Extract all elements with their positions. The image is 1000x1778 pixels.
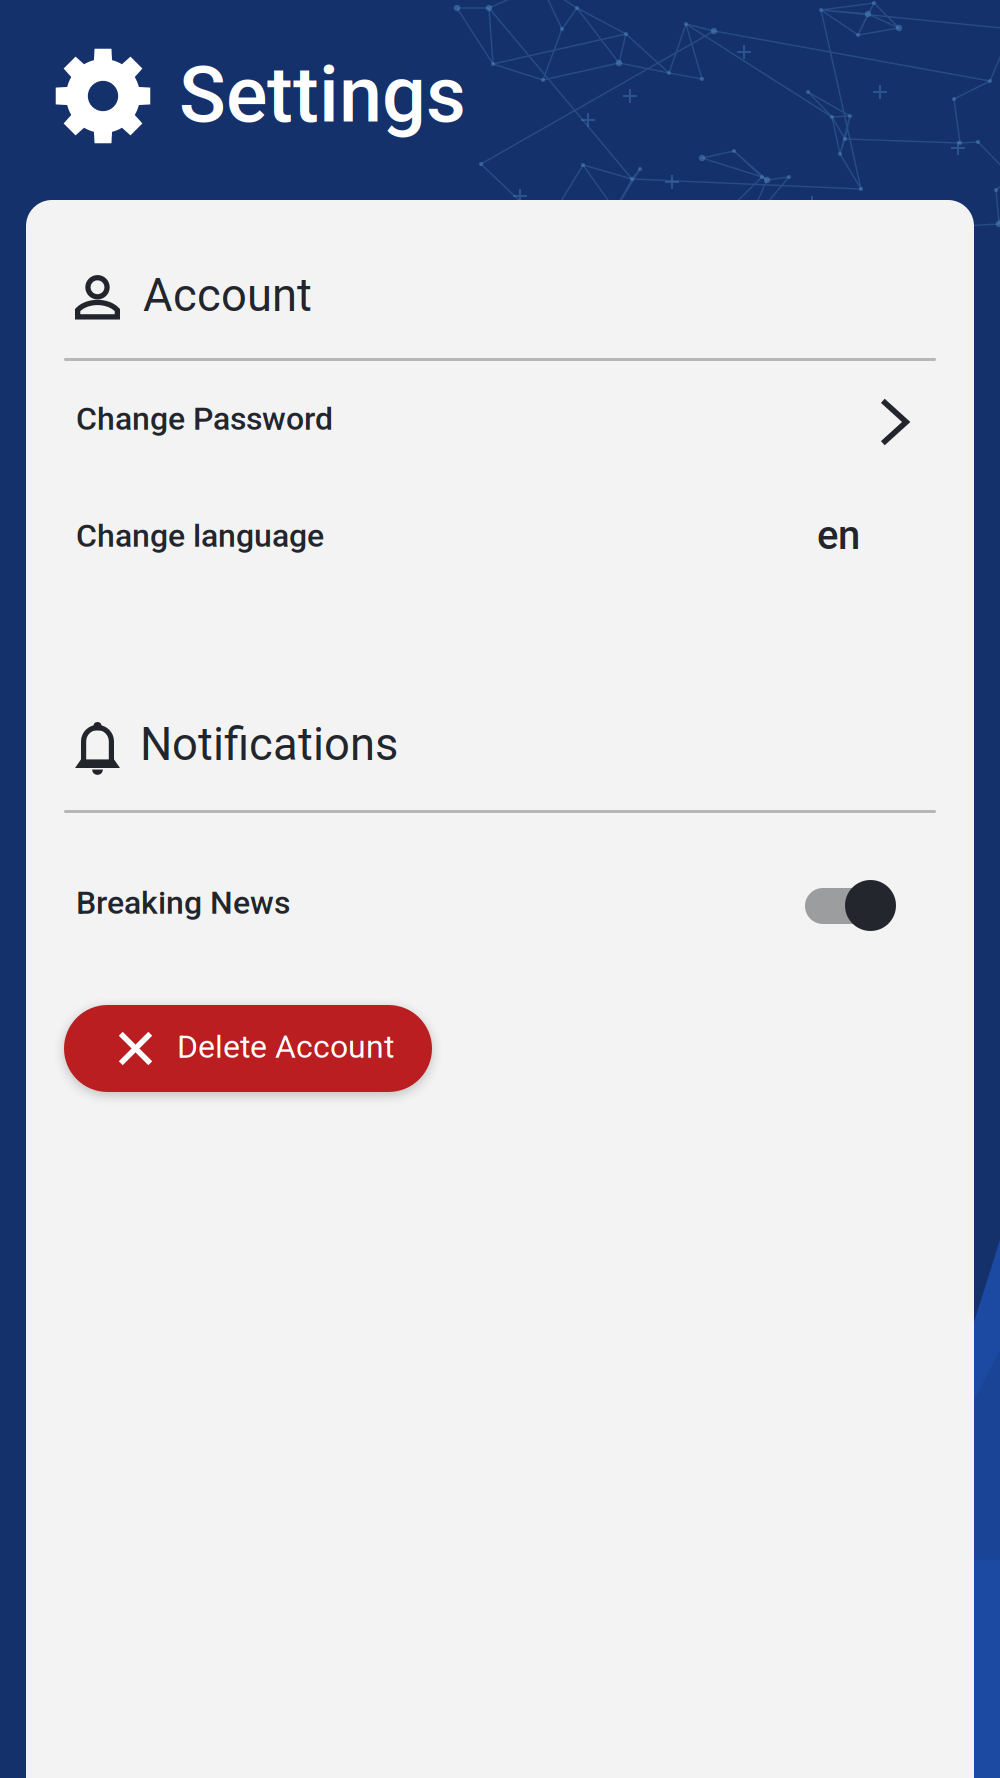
- staticText: Notifications: [140, 718, 398, 771]
- button[interactable]: Delete Account: [64, 1005, 432, 1092]
- staticText: Delete Account: [177, 1028, 394, 1065]
- staticText: Account: [143, 269, 312, 322]
- staticText: Settings: [179, 50, 466, 140]
- button[interactable]: Change Password: [26, 380, 974, 496]
- staticText: Change language: [76, 517, 324, 554]
- staticText: en: [817, 512, 860, 559]
- button[interactable]: Breaking News: [26, 864, 974, 980]
- button[interactable]: Change language: [26, 496, 974, 606]
- staticText: Breaking News: [76, 884, 290, 921]
- staticText: Change Password: [76, 400, 333, 437]
- button[interactable]: Settings: [55, 46, 475, 146]
